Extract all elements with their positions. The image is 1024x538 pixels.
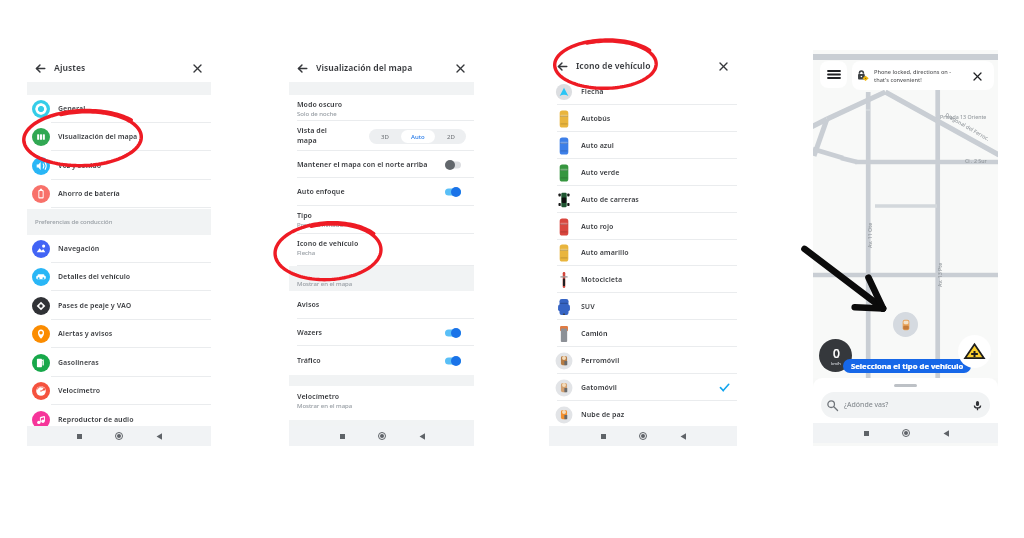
- staticText: Nube de paz: [581, 410, 729, 420]
- button[interactable]: Home: [633, 426, 653, 446]
- staticText: 2D: [447, 133, 455, 141]
- staticText: Mostrar en el mapa: [297, 280, 353, 288]
- button[interactable]: Pases de peaje y VAO: [27, 292, 211, 320]
- button[interactable]: Autobús: [549, 105, 737, 132]
- button[interactable]: Auto de carreras: [549, 186, 737, 213]
- staticText: Av. 13 Pte: [936, 262, 943, 287]
- button[interactable]: Home: [109, 426, 129, 446]
- button[interactable]: Menu: [820, 61, 847, 88]
- button[interactable]: Tráfico: [289, 346, 474, 376]
- button[interactable]: Back: [295, 61, 309, 75]
- staticText: Visualización del mapa: [316, 62, 413, 74]
- staticText: Icono de vehículo: [576, 60, 651, 72]
- staticText: Velocímetro: [58, 386, 101, 396]
- button[interactable]: Ahorro de batería: [27, 180, 211, 208]
- button[interactable]: Back: [936, 423, 956, 443]
- button[interactable]: 3D: [369, 129, 400, 144]
- button[interactable]: Icono de vehículo: [289, 234, 474, 266]
- button[interactable]: Detalles del vehículo: [27, 263, 211, 291]
- button[interactable]: Alertas y avisos: [27, 320, 211, 348]
- button[interactable]: Auto rojo: [549, 213, 737, 240]
- staticText: Flecha: [581, 87, 729, 97]
- staticText: km/h: [831, 361, 841, 366]
- staticText: Av. 11 Ote: [866, 222, 873, 248]
- button[interactable]: Back: [555, 59, 569, 73]
- button[interactable]: ¿Adónde vas?: [821, 392, 990, 418]
- button[interactable]: Back: [412, 426, 432, 446]
- button[interactable]: Modo oscuro: [289, 95, 474, 121]
- button[interactable]: Tipo: [289, 206, 474, 234]
- button[interactable]: Recents: [856, 423, 876, 443]
- staticText: Perromóvil: [581, 356, 729, 366]
- staticText: Ahorro de batería: [58, 189, 120, 199]
- button[interactable]: Perromóvil: [549, 347, 737, 374]
- button[interactable]: Close: [190, 61, 204, 75]
- button[interactable]: Recents: [69, 426, 89, 446]
- staticText: Auto verde: [581, 168, 729, 178]
- staticText: Autobús: [581, 114, 729, 124]
- staticText: General: [58, 104, 86, 114]
- button[interactable]: 2D: [436, 129, 466, 144]
- staticText: Velocímetro: [297, 392, 340, 402]
- button[interactable]: Camión: [549, 320, 737, 347]
- button[interactable]: SUV: [549, 293, 737, 320]
- staticText: Auto enfoque: [297, 187, 445, 197]
- button[interactable]: Wazers: [289, 319, 474, 346]
- button[interactable]: General: [27, 95, 211, 123]
- staticText: Camión: [581, 329, 729, 339]
- button[interactable]: Flecha: [549, 78, 737, 105]
- button[interactable]: Avisos: [289, 291, 474, 319]
- button[interactable]: Visualización del mapa: [27, 123, 211, 151]
- staticText: Selecciona el tipo de vehículo: [851, 361, 964, 371]
- staticText: Auto azul: [581, 141, 729, 151]
- staticText: Navegación: [58, 244, 100, 254]
- button[interactable]: Back: [33, 61, 47, 75]
- button[interactable]: Auto azul: [549, 132, 737, 159]
- button[interactable]: Voz y sonido: [27, 152, 211, 180]
- staticText: Icono de vehículo: [297, 239, 359, 249]
- staticText: Visualización del mapa: [58, 132, 138, 142]
- button[interactable]: Auto verde: [549, 159, 737, 186]
- button[interactable]: Velocímetro: [289, 387, 474, 421]
- staticText: Cl . 2 Sur: [965, 157, 987, 164]
- button[interactable]: Auto enfoque: [289, 178, 474, 206]
- button[interactable]: Nube de paz: [549, 401, 737, 426]
- button[interactable]: Auto amarillo: [549, 239, 737, 266]
- button[interactable]: Close: [716, 59, 730, 73]
- button[interactable]: Speed: [819, 339, 852, 372]
- button[interactable]: Phone locked, directions on -: [852, 61, 994, 90]
- staticText: Tráfico: [297, 356, 445, 366]
- button[interactable]: Gasolineras: [27, 349, 211, 377]
- button[interactable]: Recents: [593, 426, 613, 446]
- staticText: mapa: [297, 136, 317, 146]
- staticText: Tipo: [297, 211, 312, 221]
- button[interactable]: Vista del: [289, 121, 474, 151]
- staticText: Auto: [411, 133, 425, 141]
- button[interactable]: Gatomóvil: [549, 374, 737, 401]
- button[interactable]: Dismiss: [970, 69, 984, 83]
- staticText: Ajustes: [54, 62, 86, 74]
- button[interactable]: Velocímetro: [27, 377, 211, 405]
- button[interactable]: Back: [149, 426, 169, 446]
- staticText: Auto amarillo: [581, 248, 729, 258]
- staticText: SUV: [581, 302, 729, 312]
- staticText: Auto rojo: [581, 222, 729, 232]
- button[interactable]: Auto: [401, 130, 435, 143]
- button[interactable]: Navegación: [27, 235, 211, 263]
- button[interactable]: Report problem: [958, 335, 991, 368]
- button[interactable]: Back: [673, 426, 693, 446]
- button[interactable]: Mantener el mapa con el norte arriba: [289, 151, 474, 178]
- staticText: Wazers: [297, 328, 445, 338]
- staticText: Predeterminado: [297, 221, 344, 229]
- staticText: Auto de carreras: [581, 195, 729, 205]
- staticText: Modo oscuro: [297, 100, 343, 110]
- button[interactable]: Close: [453, 61, 467, 75]
- staticText: Pases de peaje y VAO: [58, 301, 132, 311]
- button[interactable]: Home: [372, 426, 392, 446]
- staticText: Preferencias de conducción: [35, 218, 113, 226]
- button[interactable]: Selecciona el tipo de vehículo: [843, 359, 971, 373]
- button[interactable]: Reproductor de audio: [27, 406, 211, 426]
- button[interactable]: Recents: [332, 426, 352, 446]
- button[interactable]: Home: [896, 423, 916, 443]
- button[interactable]: Motocicleta: [549, 266, 737, 293]
